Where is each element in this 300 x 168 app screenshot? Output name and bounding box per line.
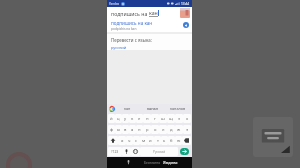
staticText: н — [146, 116, 149, 122]
staticText: ч — [128, 138, 131, 144]
button[interactable]: р — [143, 125, 151, 134]
staticText: Русский — [153, 150, 166, 154]
staticText: х — [186, 116, 189, 122]
staticText: е — [138, 116, 141, 122]
button[interactable]: е — [136, 114, 143, 123]
staticText: д — [170, 127, 173, 133]
button[interactable]: т — [154, 136, 161, 145]
button[interactable]: о — [151, 125, 159, 134]
staticText: я — [121, 138, 124, 144]
staticText: ж — [177, 127, 181, 133]
staticText: р — [146, 127, 149, 133]
button[interactable]: к — [129, 114, 136, 123]
staticText: подпишись на кан — [111, 20, 153, 26]
button[interactable]: г — [151, 114, 159, 123]
button[interactable]: Translate — [180, 148, 189, 155]
staticText: с — [135, 138, 138, 144]
staticText: ю — [177, 138, 181, 144]
staticText: ф — [110, 127, 114, 133]
button[interactable]: кан — [115, 104, 140, 113]
staticText: ш — [161, 116, 165, 122]
button[interactable]: Google — [109, 106, 115, 112]
staticText: ?123 — [111, 149, 119, 154]
button[interactable]: ш — [159, 114, 167, 123]
staticText: Yandex — [109, 2, 120, 6]
button[interactable]: л — [159, 125, 167, 134]
staticText: у — [124, 116, 127, 122]
button[interactable]: д — [167, 125, 175, 134]
button[interactable]: Русский — [140, 147, 178, 156]
button[interactable]: каналов — [165, 104, 190, 113]
staticText: Бесплатно — [144, 161, 161, 165]
staticText: подпишись на — [111, 10, 149, 17]
button[interactable]: Перевести с языка: — [107, 34, 192, 50]
staticText: Перевести с языка: — [111, 37, 152, 43]
button[interactable]: Shift — [108, 136, 118, 145]
staticText: щ — [169, 116, 173, 122]
button[interactable]: б — [168, 136, 175, 145]
staticText: каналов — [170, 106, 186, 111]
staticText: п — [138, 127, 141, 133]
button[interactable]: ф — [108, 125, 115, 134]
staticText: ы — [117, 127, 121, 133]
staticText: о — [154, 127, 157, 133]
staticText: г — [154, 116, 156, 122]
button[interactable]: х — [183, 114, 191, 123]
staticText: э — [186, 127, 189, 133]
staticText: Яндекс — [163, 160, 178, 165]
staticText: т — [157, 138, 159, 144]
staticText: кан — [124, 106, 131, 111]
staticText: ь — [163, 138, 166, 144]
button[interactable]: Emoji — [131, 147, 140, 156]
button[interactable]: подпишись на кан — [107, 18, 192, 32]
staticText: м — [142, 138, 146, 144]
staticText: л — [162, 127, 165, 133]
button[interactable]: ц — [115, 114, 122, 123]
button[interactable]: я — [118, 136, 126, 145]
button[interactable]: Listen — [183, 22, 189, 28]
button[interactable]: ч — [126, 136, 133, 145]
button[interactable]: м — [140, 136, 147, 145]
button[interactable]: н — [143, 114, 151, 123]
other: Voice search — [126, 160, 131, 165]
staticText: к — [131, 116, 134, 122]
button[interactable]: п — [136, 125, 143, 134]
button[interactable]: у — [122, 114, 129, 123]
button[interactable]: подпишись на — [107, 7, 192, 18]
staticText: ц — [117, 116, 120, 122]
button[interactable]: канал — [140, 104, 165, 113]
staticText: б — [170, 138, 173, 144]
staticText: й — [110, 116, 113, 122]
button[interactable]: в — [122, 125, 129, 134]
staticText: podpishis na kan — [111, 27, 137, 31]
staticText: кан — [149, 9, 158, 16]
button[interactable]: ь — [161, 136, 168, 145]
button[interactable]: и — [147, 136, 154, 145]
button[interactable]: й — [108, 114, 115, 123]
button[interactable]: з — [175, 114, 183, 123]
button[interactable]: ж — [175, 125, 183, 134]
button[interactable]: ю — [175, 136, 182, 145]
staticText: и — [149, 138, 152, 144]
button[interactable]: ы — [115, 125, 122, 134]
button[interactable]: а — [129, 125, 136, 134]
staticText: з — [178, 116, 181, 122]
staticText: 13:44 — [181, 2, 190, 6]
button[interactable]: с — [133, 136, 140, 145]
button[interactable]: ?123 — [108, 147, 122, 156]
staticText: канал — [147, 106, 158, 111]
other: Touch pointer — [180, 8, 190, 18]
button[interactable]: Voice input — [122, 147, 131, 156]
staticText: русский — [111, 45, 127, 50]
button[interactable]: э — [183, 125, 191, 134]
staticText: в — [124, 127, 127, 133]
staticText: а — [131, 127, 134, 133]
button[interactable]: щ — [167, 114, 175, 123]
button[interactable]: Backspace — [182, 136, 191, 145]
